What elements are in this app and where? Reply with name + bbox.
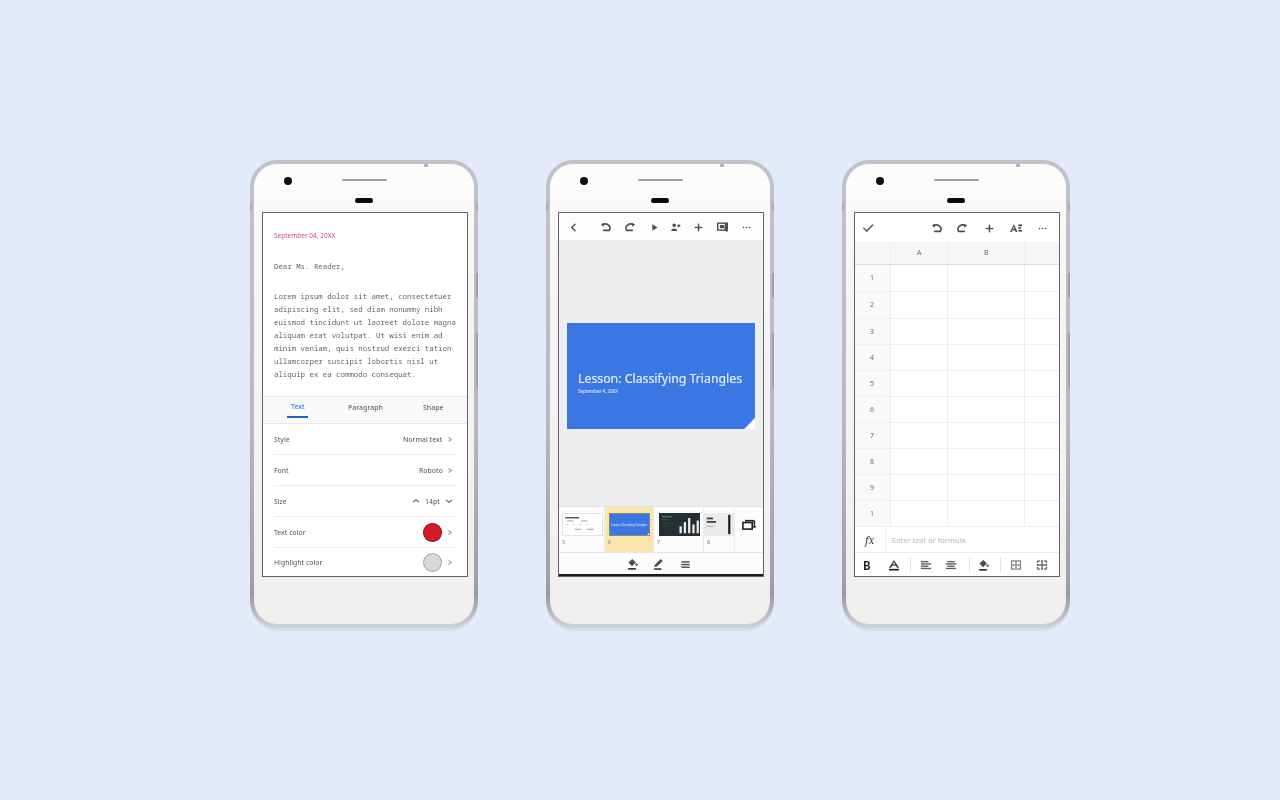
staticText: B <box>863 558 871 572</box>
button[interactable]: Insert <box>982 221 996 235</box>
staticText: Size <box>274 497 287 506</box>
button[interactable]: Add slide <box>742 518 757 533</box>
button[interactable]: Present <box>647 220 661 234</box>
staticText: 8 <box>707 538 711 545</box>
staticText: Text color <box>274 528 306 537</box>
button[interactable]: Comment <box>716 220 730 234</box>
staticText: 7 <box>657 538 661 545</box>
button[interactable]: Paragraph <box>331 397 399 423</box>
staticText: Style <box>274 435 290 444</box>
button[interactable]: Style <box>263 424 467 454</box>
staticText: Highlight color <box>274 558 323 567</box>
staticText: Roboto <box>419 466 443 475</box>
staticText: 4 <box>870 353 875 363</box>
button[interactable]: Back <box>566 220 580 234</box>
button[interactable]: Slide 6 <box>605 507 654 552</box>
button[interactable]: Fill color <box>625 557 639 571</box>
staticText: fx <box>865 533 875 547</box>
button[interactable]: More options <box>1035 221 1049 235</box>
staticText: Lorem ipsum dolor sit amet, consectetuer… <box>274 291 456 380</box>
button[interactable]: Layout <box>678 557 692 571</box>
button[interactable]: Fill color <box>976 558 990 572</box>
staticText: 5 <box>870 379 875 389</box>
button[interactable]: Align left <box>919 558 933 572</box>
button[interactable]: Share <box>668 220 682 234</box>
staticText: Lesson: Classifying Triangles <box>611 523 647 527</box>
button[interactable]: More options <box>739 220 753 234</box>
staticText: 6 <box>870 405 875 415</box>
staticText: 7 <box>870 431 875 441</box>
button[interactable]: Align center <box>944 558 958 572</box>
staticText: 14pt <box>425 497 440 506</box>
staticText: September 4, 20XX <box>578 388 618 394</box>
button[interactable]: Slide 8 <box>704 507 735 552</box>
staticText: 1 <box>870 273 875 283</box>
staticText: 8 <box>870 457 875 467</box>
button[interactable]: Undo <box>930 221 944 235</box>
button[interactable]: Text color <box>263 517 467 547</box>
staticText: Text <box>291 402 305 412</box>
button[interactable]: Format text <box>1009 221 1023 235</box>
button[interactable]: Slide 5 <box>559 507 605 552</box>
staticText: 3 <box>870 327 875 337</box>
staticText: Lesson: Classifying Triangles <box>578 370 743 387</box>
button[interactable]: Font <box>263 455 467 485</box>
button[interactable]: Undo <box>599 220 613 234</box>
button[interactable]: Slide 7 <box>654 507 704 552</box>
staticText: B <box>984 248 989 258</box>
staticText: Enter text or formula <box>892 535 966 545</box>
staticText: Paragraph <box>348 403 383 413</box>
staticText: Font <box>274 466 289 475</box>
staticText: 5 <box>562 538 566 545</box>
button[interactable]: Text <box>263 397 331 423</box>
staticText: A <box>917 248 922 258</box>
button[interactable]: Done <box>861 221 875 235</box>
staticText: Normal text <box>403 435 443 444</box>
staticText: 6 <box>608 538 612 545</box>
button[interactable]: Size <box>263 486 467 516</box>
staticText: 1 <box>870 509 875 519</box>
button[interactable]: Bold <box>860 558 874 572</box>
staticText: September 04, 20XX <box>274 231 336 240</box>
button[interactable]: Merge cells <box>1035 558 1049 572</box>
staticText: 9 <box>870 483 875 493</box>
button[interactable]: Redo <box>623 220 637 234</box>
button[interactable]: Redo <box>955 221 969 235</box>
button[interactable]: Borders <box>1009 558 1023 572</box>
button[interactable]: Highlight color <box>263 548 467 576</box>
staticText: Dear Ms. Reader, <box>274 261 345 271</box>
button[interactable]: Add <box>691 220 705 234</box>
button[interactable]: Text color <box>887 558 901 572</box>
button[interactable]: Edit <box>651 557 665 571</box>
button[interactable]: Shape <box>399 397 467 423</box>
staticText: Shape <box>423 403 444 413</box>
button[interactable]: fx <box>855 527 1059 552</box>
staticText: 2 <box>870 300 875 310</box>
button[interactable]: Lesson: Classifying Triangles <box>567 323 755 429</box>
